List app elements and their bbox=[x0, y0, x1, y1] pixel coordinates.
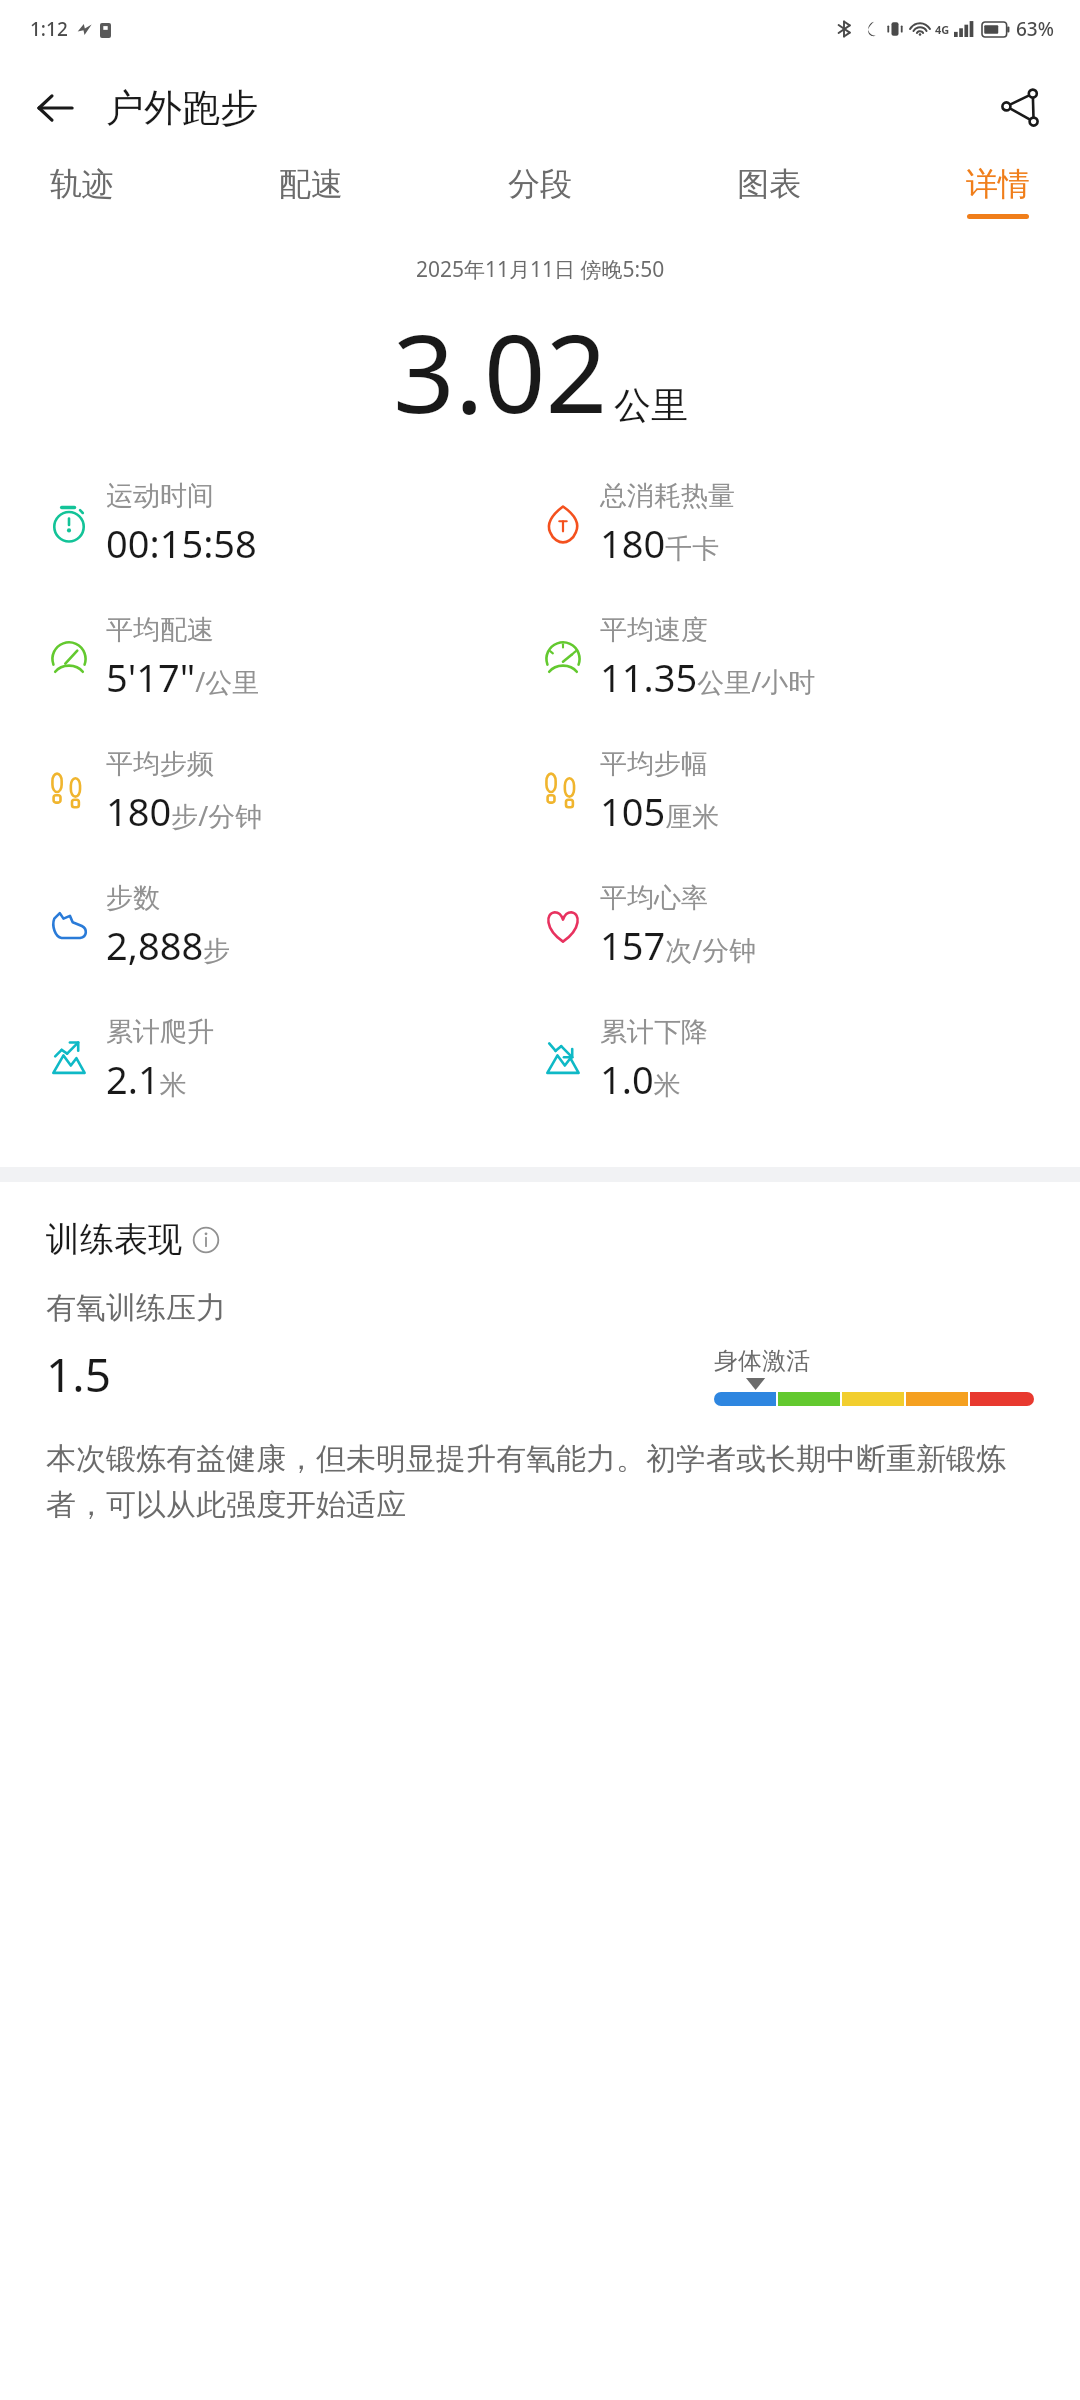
button[interactable]: 训练表现 bbox=[46, 1218, 220, 1261]
staticText: 1:12 bbox=[30, 16, 68, 42]
button[interactable]: Back bbox=[24, 77, 86, 139]
button[interactable]: 配速 bbox=[269, 158, 353, 225]
staticText: 平均心率 bbox=[600, 881, 708, 915]
staticText: 00:15:58 bbox=[106, 517, 257, 569]
staticText: 63% bbox=[1016, 16, 1054, 42]
staticText: 累计爬升 bbox=[106, 1015, 214, 1049]
button[interactable]: 运动时间 bbox=[46, 479, 540, 569]
staticText: 详情 bbox=[966, 164, 1030, 204]
staticText: 分段 bbox=[508, 164, 572, 204]
staticText: 2,888步 bbox=[106, 919, 231, 971]
staticText: 配速 bbox=[279, 164, 343, 204]
staticText: 105厘米 bbox=[600, 785, 720, 837]
staticText: 1.0米 bbox=[600, 1053, 681, 1105]
button[interactable]: 累计下降 bbox=[540, 1015, 1034, 1105]
staticText: 步数 bbox=[106, 881, 160, 915]
staticText: 本次锻炼有益健康，但未明显提升有氧能力。初学者或长期中断重新锻炼者，可以从此强度… bbox=[46, 1440, 1034, 1524]
staticText: 157次/分钟 bbox=[600, 919, 757, 971]
button[interactable]: 轨迹 bbox=[40, 158, 124, 225]
button[interactable]: 累计爬升 bbox=[46, 1015, 540, 1105]
staticText: 总消耗热量 bbox=[600, 479, 735, 513]
button[interactable]: 步数 bbox=[46, 881, 540, 971]
staticText: 2025年11月11日 傍晚5:50 bbox=[416, 255, 665, 284]
staticText: 轨迹 bbox=[50, 164, 114, 204]
button[interactable]: 平均速度 bbox=[540, 613, 1034, 703]
staticText: 1.5 bbox=[46, 1343, 111, 1406]
staticText: 身体激活 bbox=[714, 1346, 810, 1376]
staticText: 180步/分钟 bbox=[106, 785, 263, 837]
staticText: 训练表现 bbox=[46, 1218, 182, 1261]
staticText: 平均配速 bbox=[106, 613, 214, 647]
button[interactable]: 平均步幅 bbox=[540, 747, 1034, 837]
button[interactable]: 平均步频 bbox=[46, 747, 540, 837]
staticText: 公里 bbox=[614, 382, 688, 429]
button[interactable]: 详情 bbox=[956, 158, 1040, 225]
staticText: 平均步频 bbox=[106, 747, 214, 781]
button[interactable]: 平均配速 bbox=[46, 613, 540, 703]
button[interactable]: 图表 bbox=[727, 158, 811, 225]
staticText: 11.35公里/小时 bbox=[600, 651, 816, 703]
staticText: 累计下降 bbox=[600, 1015, 708, 1049]
staticText: 2.1米 bbox=[106, 1053, 187, 1105]
button[interactable]: 分段 bbox=[498, 158, 582, 225]
staticText: 平均步幅 bbox=[600, 747, 708, 781]
staticText: 运动时间 bbox=[106, 479, 214, 513]
staticText: 3.02 bbox=[393, 298, 608, 445]
staticText: 180千卡 bbox=[600, 517, 720, 569]
button[interactable]: Share bbox=[986, 74, 1054, 142]
staticText: 4G bbox=[935, 22, 950, 37]
staticText: 图表 bbox=[737, 164, 801, 204]
button[interactable]: 总消耗热量 bbox=[540, 479, 1034, 569]
button[interactable]: 平均心率 bbox=[540, 881, 1034, 971]
staticText: 有氧训练压力 bbox=[46, 1289, 226, 1327]
staticText: 5'17"/公里 bbox=[106, 651, 260, 703]
staticText: 平均速度 bbox=[600, 613, 708, 647]
staticText: 户外跑步 bbox=[106, 84, 258, 132]
